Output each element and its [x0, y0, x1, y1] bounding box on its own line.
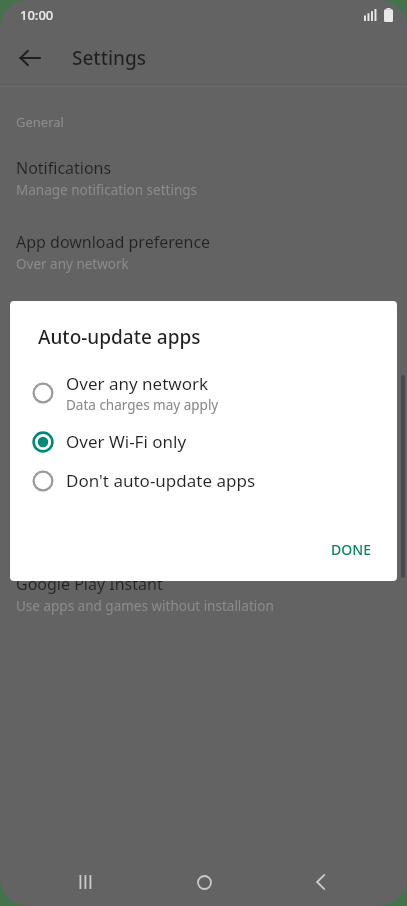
- staticText: Off: [16, 449, 36, 467]
- staticText: Over any network: [16, 255, 129, 273]
- button[interactable]: Over any network: [10, 364, 397, 422]
- staticText: Parental controls: [16, 425, 144, 447]
- staticText: User controls: [16, 383, 98, 401]
- button[interactable]: Parental controls: [0, 423, 407, 469]
- staticText: Auto-update apps: [38, 324, 201, 350]
- button[interactable]: App download preference: [0, 229, 407, 275]
- staticText: DONE: [331, 540, 371, 559]
- staticText: General: [16, 113, 64, 131]
- button[interactable]: Back: [8, 36, 52, 80]
- button[interactable]: Google Play Instant: [0, 571, 407, 617]
- button[interactable]: Recent apps: [54, 858, 118, 906]
- button[interactable]: Home: [172, 858, 236, 906]
- button[interactable]: Back: [289, 858, 353, 906]
- staticText: App download preference: [16, 231, 211, 253]
- staticText: Don't auto-update apps: [66, 469, 256, 492]
- button[interactable]: Don't auto-update apps: [10, 461, 397, 500]
- staticText: Google Play Instant: [16, 573, 163, 595]
- staticText: Data charges may apply: [66, 396, 219, 414]
- staticText: 10:00: [20, 6, 54, 24]
- button[interactable]: Over Wi-Fi only: [10, 422, 397, 461]
- button[interactable]: Require authentication for purchases: [0, 497, 407, 543]
- staticText: Over Wi-Fi only: [16, 329, 112, 347]
- staticText: Notifications: [16, 157, 112, 179]
- button[interactable]: Notifications: [0, 155, 407, 201]
- staticText: Manage notification settings: [16, 181, 198, 199]
- button[interactable]: Auto-update apps: [0, 303, 407, 349]
- staticText: Use apps and games without installation: [16, 597, 274, 615]
- button[interactable]: DONE: [321, 532, 381, 567]
- staticText: Over Wi-Fi only: [66, 430, 187, 453]
- staticText: Over any network: [66, 372, 209, 395]
- staticText: Settings: [72, 45, 146, 71]
